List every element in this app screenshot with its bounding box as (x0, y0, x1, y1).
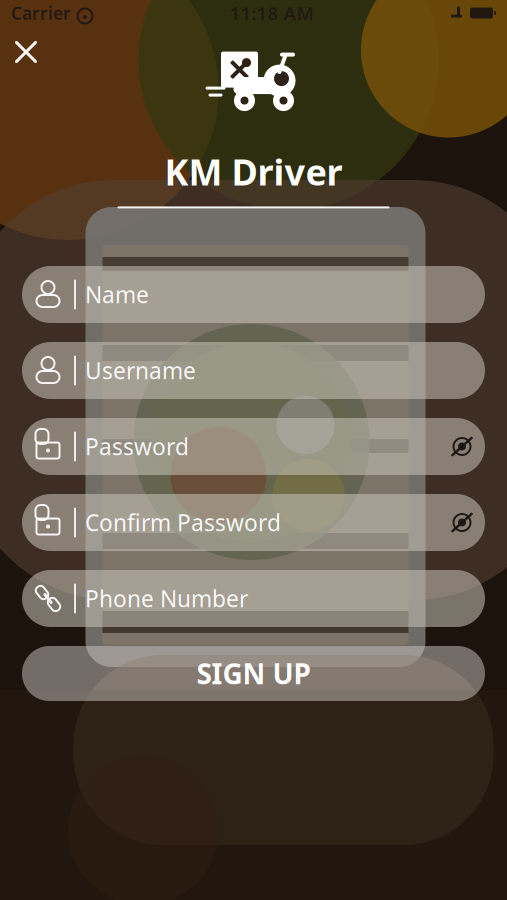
button[interactable]: Close (0, 26, 52, 78)
staticText: Confirm Password (85, 507, 281, 537)
staticText: Name (85, 279, 149, 309)
button[interactable]: SIGN UP (22, 646, 485, 701)
button[interactable]: Username (22, 342, 485, 399)
staticText: Username (85, 355, 196, 385)
staticText: SIGN UP (196, 655, 310, 692)
staticText: Carrier (11, 1, 71, 24)
button[interactable]: Password (22, 418, 485, 475)
staticText: KM Driver (164, 148, 342, 195)
staticText: 11:18 AM (229, 1, 313, 25)
button[interactable]: Confirm Password (22, 494, 485, 551)
staticText: Phone Number (85, 583, 248, 613)
button[interactable]: Phone Number (22, 570, 485, 627)
button[interactable]: Name (22, 266, 485, 323)
staticText: Password (85, 431, 189, 461)
